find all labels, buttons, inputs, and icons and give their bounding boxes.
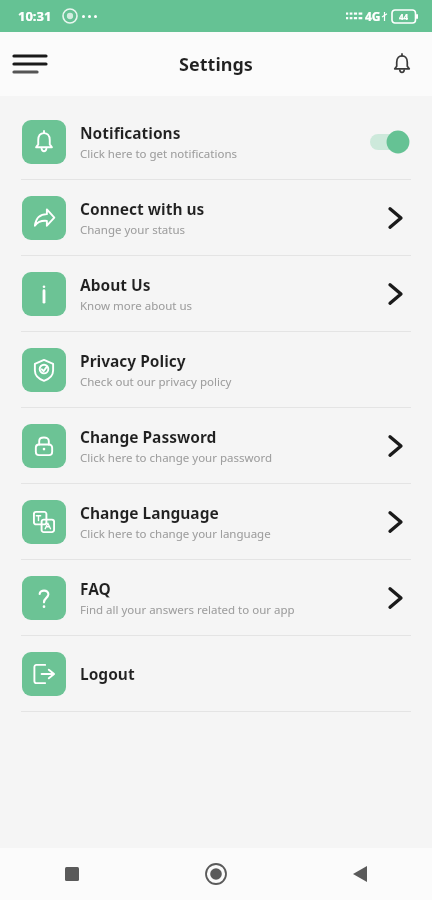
- button[interactable]: Open Change Password: [380, 431, 410, 461]
- button[interactable]: Open FAQ: [380, 583, 410, 613]
- button[interactable]: Connect with us: [0, 180, 432, 255]
- button[interactable]: About Us: [0, 256, 432, 331]
- staticText: Notifications: [80, 122, 181, 143]
- button[interactable]: Open Change Language: [380, 507, 410, 537]
- staticText: About Us: [80, 274, 151, 295]
- staticText: Change Password: [80, 426, 217, 447]
- button[interactable]: Notifications: [380, 42, 424, 86]
- staticText: Change Language: [80, 502, 219, 523]
- button[interactable]: Change Language: [0, 484, 432, 559]
- button[interactable]: Open About Us: [380, 279, 410, 309]
- button[interactable]: Logout: [0, 636, 432, 711]
- staticText: Click here to change your password: [80, 450, 273, 466]
- button[interactable]: Open Connect with us: [380, 203, 410, 233]
- button[interactable]: Change Password: [0, 408, 432, 483]
- button[interactable]: Toggle notifications: [370, 129, 410, 155]
- button[interactable]: Recents: [0, 848, 144, 900]
- button[interactable]: Home: [144, 848, 288, 900]
- staticText: Know more about us: [80, 298, 193, 314]
- button[interactable]: Menu: [6, 40, 54, 88]
- button[interactable]: FAQ: [0, 560, 432, 635]
- staticText: 10:31: [18, 7, 52, 25]
- staticText: Click here to get notifications: [80, 146, 238, 162]
- staticText: 4G: [365, 8, 381, 24]
- button[interactable]: Privacy Policy: [0, 332, 432, 407]
- staticText: 44: [399, 11, 409, 22]
- staticText: Check out our privacy policy: [80, 374, 232, 390]
- staticText: Settings: [179, 52, 253, 77]
- staticText: Find all your answers related to our app: [80, 602, 295, 618]
- staticText: Logout: [80, 663, 135, 684]
- staticText: Change your status: [80, 222, 186, 238]
- staticText: FAQ: [80, 578, 111, 599]
- staticText: Click here to change your language: [80, 526, 271, 542]
- button[interactable]: Notifications: [0, 104, 432, 179]
- staticText: Privacy Policy: [80, 350, 186, 371]
- staticText: Connect with us: [80, 198, 205, 219]
- button[interactable]: Back: [288, 848, 432, 900]
